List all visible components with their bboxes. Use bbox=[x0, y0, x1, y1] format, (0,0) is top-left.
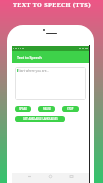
button[interactable]: PAUSE bbox=[38, 106, 55, 112]
button[interactable]: GET AVAILABLE LANGUAGES bbox=[15, 116, 65, 122]
button[interactable]: Back bbox=[26, 173, 33, 180]
button[interactable]: STOP bbox=[62, 106, 79, 112]
button[interactable]: Home bbox=[47, 173, 54, 180]
staticText: Start where you are... bbox=[18, 69, 49, 73]
staticText: STOP bbox=[67, 107, 74, 111]
button[interactable]: SPEAK bbox=[15, 106, 31, 112]
staticText: GET AVAILABLE LANGUAGES bbox=[23, 117, 58, 121]
staticText: PAUSE bbox=[43, 107, 51, 111]
button[interactable]: Recents bbox=[68, 173, 75, 180]
button[interactable]: Start where you are... bbox=[15, 67, 86, 100]
staticText: Text to Speech bbox=[17, 55, 42, 60]
staticText: TEXT TO SPEECH (TTS) bbox=[13, 1, 91, 9]
staticText: SPEAK bbox=[19, 107, 27, 111]
